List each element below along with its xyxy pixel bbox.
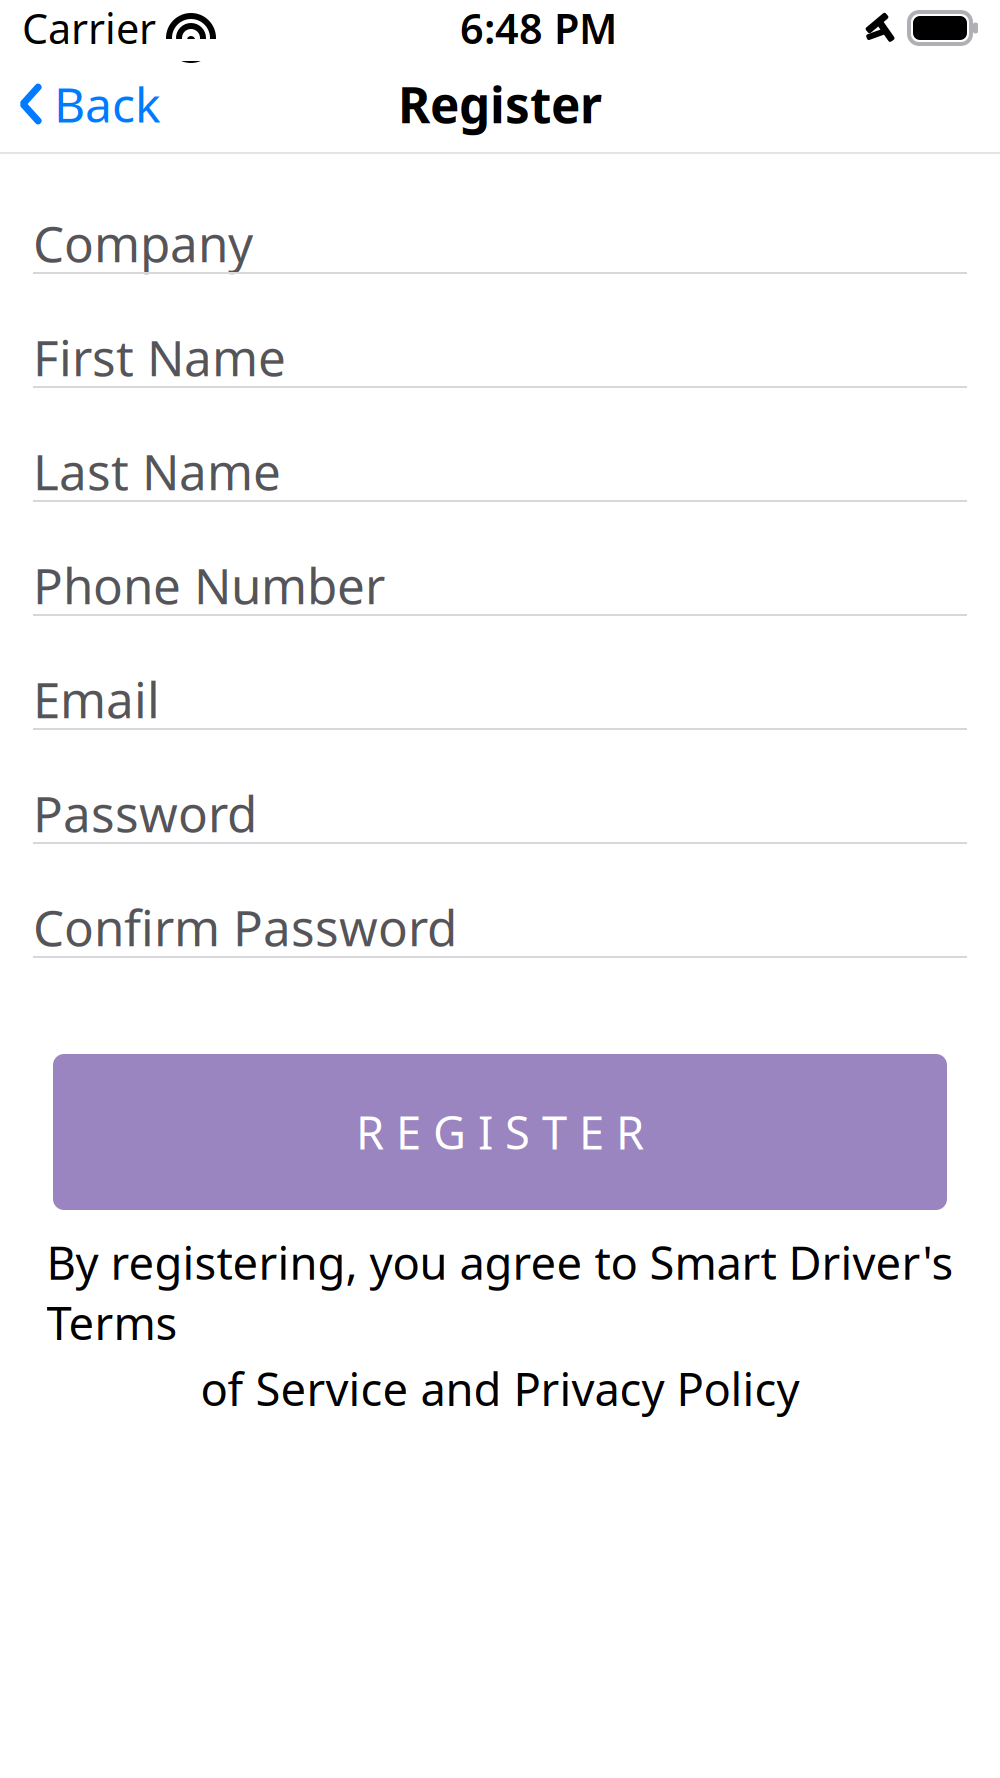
staticText: 6:48 PM xyxy=(460,1,617,55)
staticText: By registering, you agree to Smart Drive… xyxy=(46,1232,953,1352)
button[interactable]: Back xyxy=(0,62,179,146)
button[interactable]: First Name xyxy=(33,328,967,442)
staticText: Back xyxy=(54,72,161,136)
staticText: Email xyxy=(33,666,160,732)
staticText: Carrier xyxy=(22,1,156,55)
button[interactable]: Company xyxy=(33,214,967,328)
button[interactable]: Last Name xyxy=(33,442,967,556)
button[interactable]: R E G I S T E R xyxy=(53,1054,947,1210)
button[interactable]: Password xyxy=(33,784,967,898)
staticText: Phone Number xyxy=(33,552,385,618)
staticText: Register xyxy=(398,71,602,137)
staticText: Confirm Password xyxy=(33,894,457,960)
button[interactable]: Email xyxy=(33,670,967,784)
staticText: of Service and Privacy Policy xyxy=(200,1358,799,1419)
staticText: Last Name xyxy=(33,438,281,504)
staticText: First Name xyxy=(33,324,286,390)
staticText: Company xyxy=(33,210,253,276)
staticText: R E G I S T E R xyxy=(356,1102,644,1162)
staticText: Password xyxy=(33,780,257,846)
button[interactable]: Confirm Password xyxy=(33,898,967,1012)
button[interactable]: Phone Number xyxy=(33,556,967,670)
